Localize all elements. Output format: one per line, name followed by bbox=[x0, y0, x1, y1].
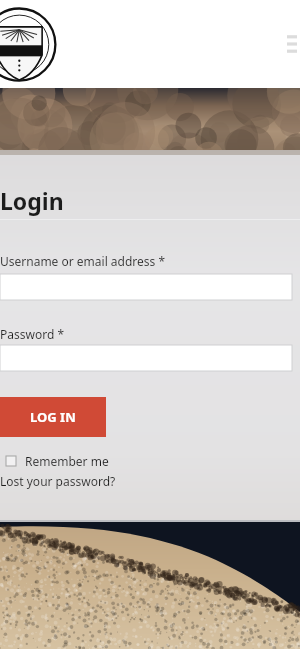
button[interactable]: Lost your password? bbox=[0, 473, 116, 489]
button[interactable]: Menu bbox=[270, 27, 298, 61]
staticText: Login bbox=[0, 185, 64, 216]
button[interactable]: Club Ride home bbox=[0, 4, 46, 82]
staticText: LOG IN bbox=[30, 408, 76, 426]
staticText: Password * bbox=[0, 326, 65, 342]
staticText: Lost your password? bbox=[0, 473, 116, 489]
button[interactable]: Remember me bbox=[0, 450, 300, 472]
staticText: Username or email address * bbox=[0, 253, 166, 269]
button[interactable] bbox=[0, 274, 292, 300]
staticText: Remember me bbox=[25, 453, 109, 469]
button[interactable] bbox=[0, 345, 292, 371]
button[interactable]: LOG IN bbox=[0, 397, 106, 437]
